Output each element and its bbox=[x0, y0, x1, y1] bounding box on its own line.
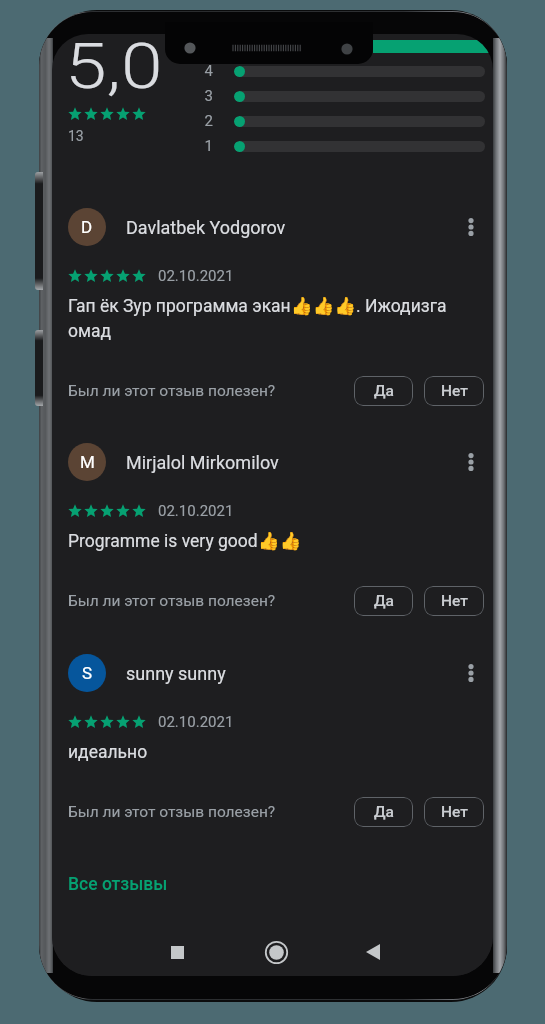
staticText: Да bbox=[374, 592, 394, 610]
staticText: Все отзывы bbox=[68, 874, 168, 895]
staticText: 02.10.2021 bbox=[158, 502, 234, 520]
button[interactable]: More options bbox=[452, 654, 490, 692]
staticText: Нет bbox=[441, 803, 468, 821]
staticText: Programme is very good👍👍 bbox=[68, 531, 450, 552]
button[interactable]: Нет bbox=[424, 376, 484, 406]
staticText: Был ли этот отзыв полезен? bbox=[68, 592, 276, 610]
staticText: Был ли этот отзыв полезен? bbox=[68, 382, 276, 400]
staticText: 4 bbox=[197, 62, 213, 80]
button[interactable]: More options bbox=[452, 443, 490, 481]
button[interactable]: Все отзывы bbox=[58, 864, 178, 905]
staticText: sunny sunny bbox=[126, 663, 226, 684]
button[interactable]: M bbox=[52, 443, 493, 481]
button[interactable]: D bbox=[52, 208, 493, 246]
staticText: Был ли этот отзыв полезен? bbox=[68, 803, 276, 821]
button[interactable]: Home bbox=[254, 930, 298, 974]
button[interactable]: Да bbox=[354, 586, 413, 616]
staticText: 2 bbox=[197, 112, 213, 130]
button[interactable]: More options bbox=[452, 208, 490, 246]
button[interactable]: Back bbox=[351, 930, 395, 974]
button[interactable]: S bbox=[52, 654, 493, 692]
button[interactable]: Нет bbox=[424, 586, 484, 616]
staticText: Нет bbox=[441, 592, 468, 610]
staticText: Mirjalol Mirkomilov bbox=[126, 452, 279, 473]
button[interactable]: Recents bbox=[155, 930, 199, 974]
staticText: 3 bbox=[197, 87, 213, 105]
staticText: 1 bbox=[197, 137, 213, 155]
staticText: Нет bbox=[441, 382, 468, 400]
staticText: 02.10.2021 bbox=[158, 267, 234, 285]
staticText: Да bbox=[374, 803, 394, 821]
staticText: M bbox=[80, 452, 95, 472]
button[interactable]: Да bbox=[354, 797, 413, 827]
staticText: D bbox=[81, 217, 93, 237]
staticText: идеально bbox=[68, 742, 450, 763]
staticText: Да bbox=[374, 382, 394, 400]
staticText: S bbox=[82, 663, 93, 683]
staticText: Davlatbek Yodgorov bbox=[126, 217, 286, 238]
staticText: 02.10.2021 bbox=[158, 713, 234, 731]
staticText: 5,0 bbox=[65, 34, 163, 104]
button[interactable]: Нет bbox=[424, 797, 484, 827]
staticText: 13 bbox=[68, 128, 84, 144]
staticText: Гап ёк Зур программа экан👍👍👍. Ижодизга о… bbox=[68, 296, 450, 341]
button[interactable]: Да bbox=[354, 376, 413, 406]
